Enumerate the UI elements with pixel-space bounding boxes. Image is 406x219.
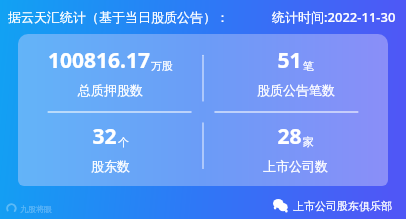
staticText: 上市公司数 — [263, 158, 328, 174]
staticText: 统计时间:2022-11-30 — [272, 8, 396, 26]
staticText: 32 — [92, 122, 117, 151]
button[interactable]: 28 — [203, 110, 388, 186]
staticText: 笔 — [303, 59, 314, 73]
button[interactable]: 32 — [18, 110, 203, 186]
button[interactable]: 51 — [203, 34, 388, 110]
staticText: 上市公司股东俱乐部 — [293, 199, 392, 213]
staticText: 51 — [277, 46, 302, 75]
staticText: 万股 — [151, 59, 173, 73]
button[interactable]: WeChat — [271, 197, 394, 214]
staticText: 总质押股数 — [78, 82, 143, 98]
staticText: 个 — [118, 135, 129, 149]
other: WeChat — [273, 198, 288, 213]
staticText: 28 — [277, 122, 302, 151]
staticText: 股东数 — [91, 158, 130, 174]
staticText: 家 — [303, 135, 314, 149]
staticText: 股质公告笔数 — [257, 82, 335, 98]
staticText: 100816.17 — [48, 46, 150, 75]
staticText: 九股将眼 — [20, 204, 52, 214]
staticText: 据云天汇统计（基于当日股质公告）： — [8, 9, 229, 25]
button[interactable]: 100816.17 — [18, 34, 203, 110]
